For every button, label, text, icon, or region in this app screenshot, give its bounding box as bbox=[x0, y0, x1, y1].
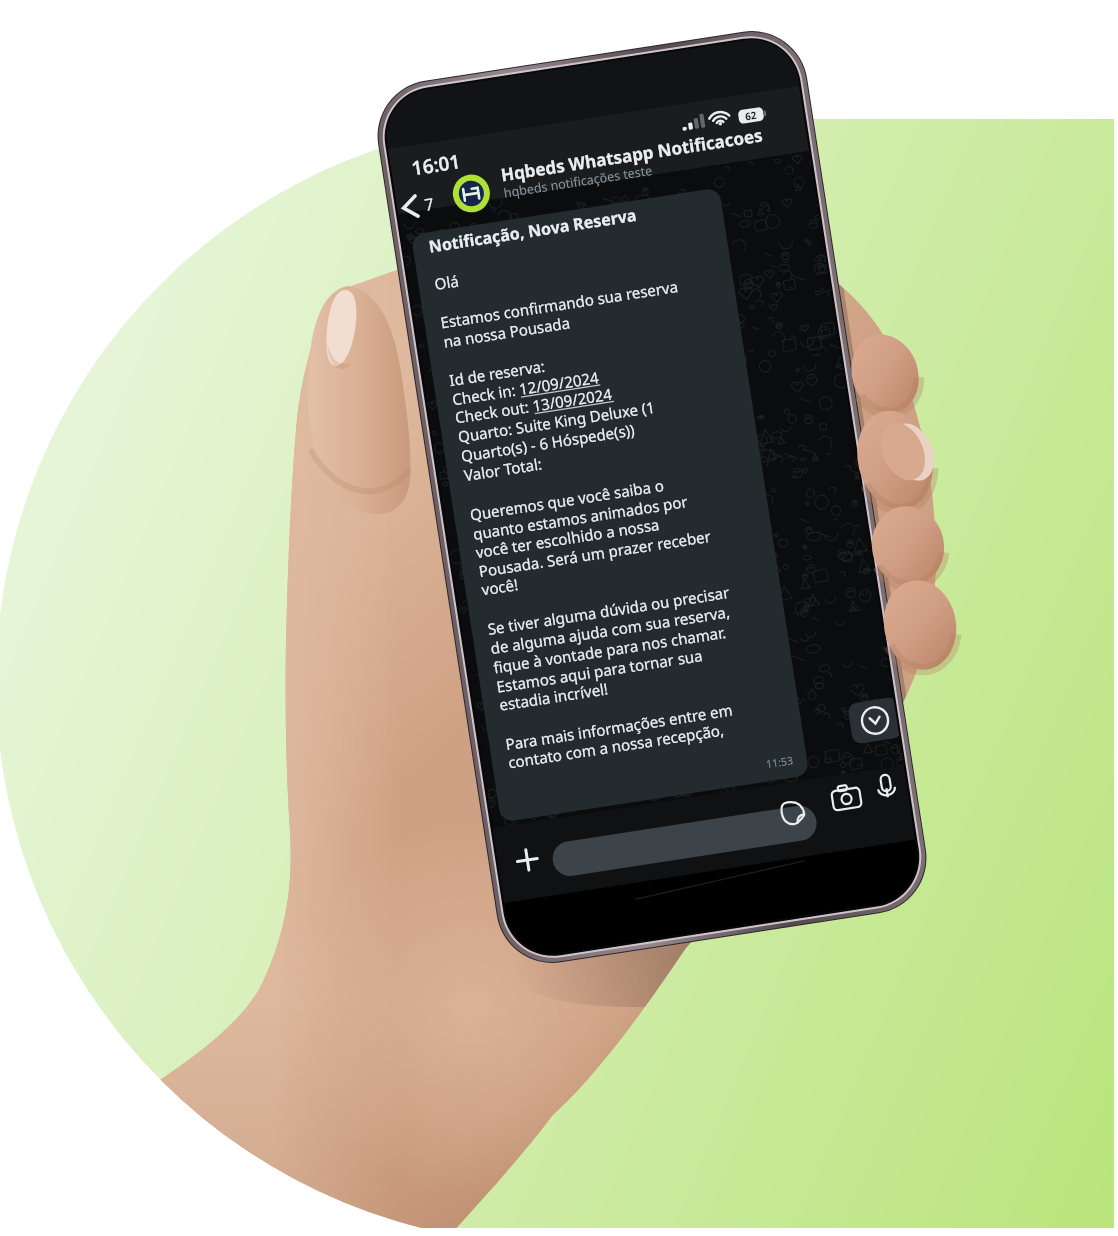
button[interactable]: Hqbeds WhatsApp notification on phone bbox=[0, 0, 1118, 1236]
